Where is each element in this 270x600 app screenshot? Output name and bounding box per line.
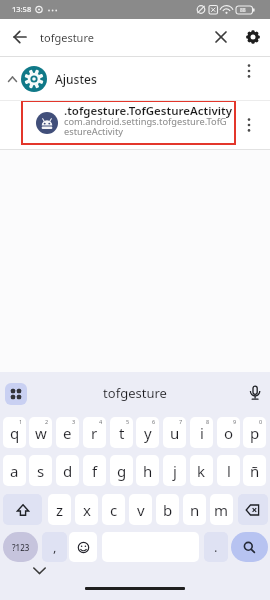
staticText: 3 [72, 418, 76, 425]
button[interactable] [27, 561, 52, 581]
staticText: l [227, 461, 231, 481]
staticText: w [35, 423, 47, 443]
staticText: 7 [179, 418, 183, 425]
staticText: .tofgesture.TofGestureActivity [64, 103, 232, 119]
staticText: q [10, 423, 20, 443]
staticText: 4 [99, 418, 103, 425]
button[interactable]: .tofgesture.TofGestureActivity [0, 100, 270, 152]
button[interactable]: e [56, 417, 79, 448]
staticText: Ajustes [55, 71, 97, 87]
button[interactable] [3, 494, 42, 525]
staticText: j [173, 461, 177, 481]
staticText: g [117, 461, 127, 481]
button[interactable]: ñ [243, 455, 266, 486]
staticText: y [144, 423, 152, 443]
staticText: 88 [240, 7, 246, 14]
button[interactable]: s [29, 455, 52, 486]
staticText: 2 [45, 418, 49, 425]
staticText: f [92, 461, 98, 481]
button[interactable]: n [183, 494, 206, 525]
button[interactable] [238, 494, 268, 525]
button[interactable] [5, 383, 27, 405]
staticText: p [250, 423, 260, 443]
staticText: 9 [233, 418, 237, 425]
button[interactable]: q [3, 417, 26, 448]
button[interactable]: . [204, 532, 228, 562]
button[interactable]: f [83, 455, 106, 486]
button[interactable]: h [136, 455, 159, 486]
button[interactable]: i [190, 417, 213, 448]
staticText: t [119, 423, 125, 443]
staticText: z [56, 500, 64, 520]
button[interactable]: t [110, 417, 133, 448]
button[interactable]: b [156, 494, 179, 525]
button[interactable]: Ajustes [0, 57, 270, 100]
button[interactable]: v [129, 494, 152, 525]
staticText: k [197, 461, 206, 481]
staticText: m [214, 500, 229, 520]
button[interactable]: j [163, 455, 186, 486]
staticText: u [170, 423, 180, 443]
button[interactable]: l [217, 455, 240, 486]
staticText: e [63, 423, 72, 443]
button[interactable]: w [29, 417, 52, 448]
staticText: tofgesture [40, 30, 94, 45]
staticText: 5 [126, 418, 130, 425]
staticText: o [224, 423, 234, 443]
button[interactable]: c [102, 494, 125, 525]
button[interactable]: x [75, 494, 98, 525]
staticText: d [63, 461, 73, 481]
staticText: x [83, 500, 91, 520]
button[interactable]: ?123 [3, 532, 38, 562]
staticText: a [10, 461, 19, 481]
staticText: tofgesture [103, 384, 167, 402]
button[interactable]: o [217, 417, 240, 448]
button[interactable]: k [190, 455, 213, 486]
button[interactable]: d [56, 455, 79, 486]
button[interactable]: z [48, 494, 71, 525]
staticText: h [143, 461, 153, 481]
staticText: 1 [19, 418, 23, 425]
button[interactable] [6, 23, 34, 51]
staticText: , [53, 538, 57, 556]
button[interactable]: r [83, 417, 106, 448]
button[interactable] [69, 532, 97, 562]
button[interactable]: , [42, 532, 67, 562]
staticText: com.android.settings.tofgesture.TofG est… [64, 115, 227, 138]
staticText: 8 [206, 418, 210, 425]
staticText: . [214, 538, 218, 556]
staticText: c [110, 500, 118, 520]
button[interactable] [207, 23, 235, 51]
staticText: v [137, 500, 145, 520]
button[interactable]: m [210, 494, 233, 525]
staticText: r [91, 423, 98, 443]
staticText: 13:58 [12, 4, 32, 14]
button[interactable]: tofgesture [95, 378, 175, 408]
button[interactable] [244, 382, 266, 404]
button[interactable]: p [243, 417, 266, 448]
staticText: b [163, 500, 173, 520]
button[interactable]: y [136, 417, 159, 448]
button[interactable]: g [110, 455, 133, 486]
staticText: ñ [250, 461, 260, 481]
button[interactable]: u [163, 417, 186, 448]
staticText: ?123 [12, 542, 30, 553]
staticText: s [37, 461, 45, 481]
button[interactable]: a [3, 455, 26, 486]
button[interactable] [231, 532, 268, 562]
button[interactable] [239, 23, 267, 51]
staticText: i [200, 423, 204, 443]
staticText: 6 [152, 418, 156, 425]
staticText: 0 [259, 418, 263, 425]
staticText: n [190, 500, 200, 520]
